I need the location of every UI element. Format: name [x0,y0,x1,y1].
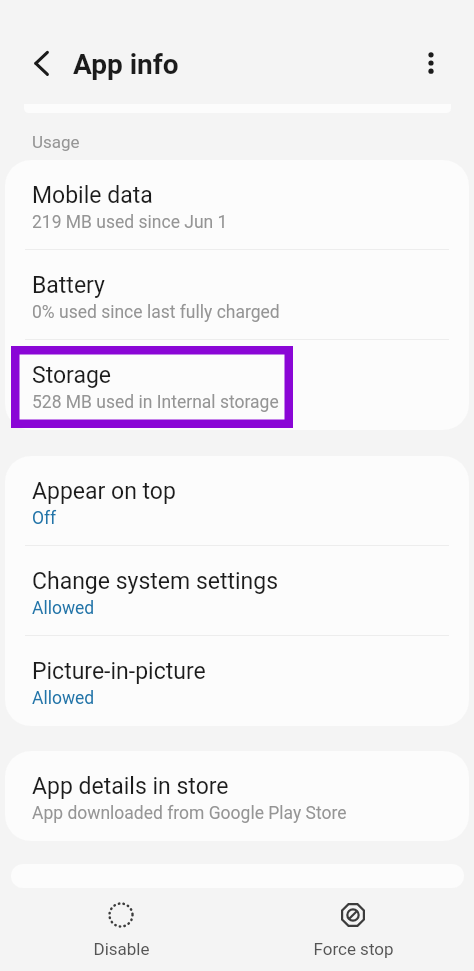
button[interactable]: Force stop [237,888,469,971]
button[interactable]: Back [21,43,61,83]
staticText: Allowed [32,688,95,709]
staticText: Battery [32,272,105,299]
staticText: Change system settings [32,568,279,595]
button[interactable]: Mobile data [5,160,469,249]
staticText: 0% used since last fully charged [32,302,280,323]
button[interactable]: Disable [5,888,237,971]
staticText: 528 MB used in Internal storage [32,392,279,413]
staticText: Appear on top [32,478,176,505]
button[interactable]: Appear on top [5,456,469,545]
staticText: App details in store [32,773,229,800]
staticText: Picture-in-picture [32,658,206,685]
staticText: Off [32,508,57,529]
button[interactable]: App details in store [5,751,469,840]
button[interactable]: Storage [5,340,469,429]
staticText: Usage [32,132,80,152]
button[interactable]: Battery [5,250,469,339]
staticText: Allowed [32,598,95,619]
staticText: 219 MB used since Jun 1 [32,212,228,233]
staticText: Storage [32,362,112,389]
staticText: App info [73,48,179,81]
button[interactable]: Change system settings [5,546,469,635]
staticText: Force stop [313,939,394,959]
staticText: Disable [93,939,150,959]
staticText: App downloaded from Google Play Store [32,803,347,824]
staticText: Mobile data [32,182,153,209]
button[interactable]: Picture-in-picture [5,636,469,725]
button[interactable]: More options [411,43,451,83]
